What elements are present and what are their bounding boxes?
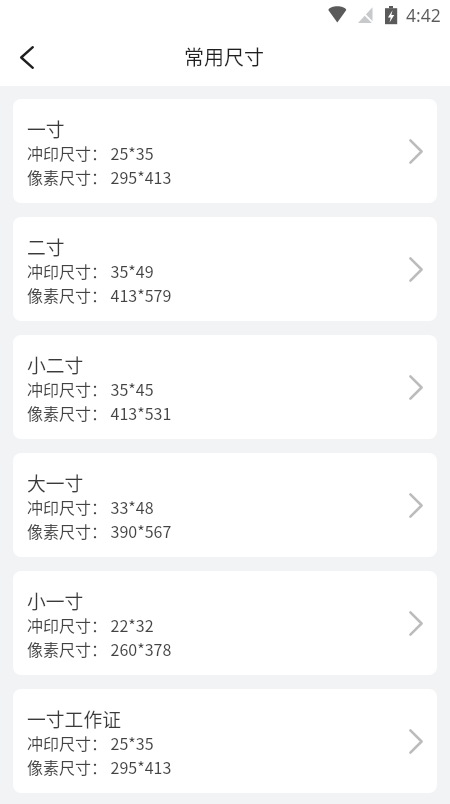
staticText: 一寸 <box>27 115 65 142</box>
staticText: 冲印尺寸： 25*35 <box>27 731 154 754</box>
staticText: 冲印尺寸： 35*45 <box>27 377 154 400</box>
button[interactable]: 小二寸 <box>13 335 437 439</box>
staticText: 小二寸 <box>27 351 84 378</box>
staticText: 像素尺寸： 390*567 <box>27 519 172 542</box>
staticText: 像素尺寸： 295*413 <box>27 755 172 778</box>
staticText: 冲印尺寸： 25*35 <box>27 141 154 164</box>
button[interactable]: 小一寸 <box>13 571 437 675</box>
staticText: 冲印尺寸： 33*48 <box>27 495 154 518</box>
button[interactable]: Back <box>7 37 47 77</box>
staticText: 像素尺寸： 413*579 <box>27 283 172 306</box>
staticText: 二寸 <box>27 233 65 260</box>
staticText: 一寸工作证 <box>27 705 121 732</box>
button[interactable]: 一寸工作证 <box>13 689 437 793</box>
staticText: 大一寸 <box>27 469 84 496</box>
staticText: 常用尺寸 <box>184 42 264 71</box>
staticText: 冲印尺寸： 22*32 <box>27 613 154 636</box>
button[interactable]: 二寸 <box>13 217 437 321</box>
button[interactable]: 大一寸 <box>13 453 437 557</box>
staticText: 小一寸 <box>27 587 84 614</box>
staticText: 4:42 <box>406 3 441 27</box>
staticText: 像素尺寸： 260*378 <box>27 637 172 660</box>
staticText: 像素尺寸： 295*413 <box>27 165 172 188</box>
button[interactable]: 一寸 <box>13 99 437 203</box>
staticText: 冲印尺寸： 35*49 <box>27 259 154 282</box>
staticText: 像素尺寸： 413*531 <box>27 401 172 424</box>
